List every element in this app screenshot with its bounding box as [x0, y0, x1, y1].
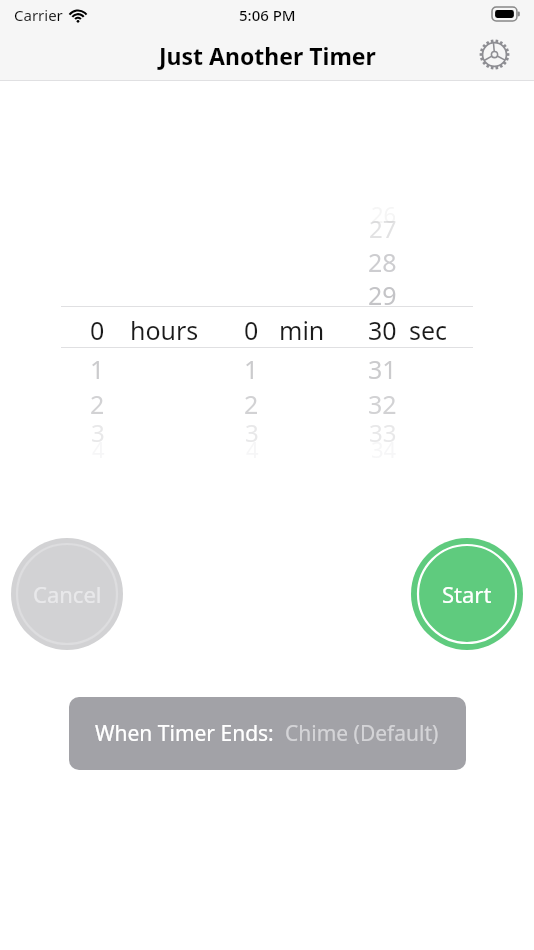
staticText: 27: [369, 212, 397, 242]
staticText: Carrier: [14, 5, 63, 25]
staticText: 2: [90, 387, 105, 417]
staticText: 5:06 PM: [239, 5, 296, 25]
staticText: 29: [368, 278, 397, 308]
staticText: 3: [245, 416, 259, 446]
staticText: 26: [371, 199, 397, 229]
staticText: 28: [368, 245, 397, 275]
staticText: sec: [409, 313, 448, 343]
staticText: 0: [90, 313, 105, 343]
staticText: 4: [246, 434, 259, 464]
staticText: When Timer Ends:: [95, 719, 274, 748]
staticText: 0: [244, 313, 259, 343]
staticText: 33: [369, 416, 397, 446]
staticText: 3: [91, 416, 105, 446]
staticText: 30: [368, 313, 397, 343]
staticText: Start: [442, 579, 492, 609]
button[interactable]: Settings: [472, 32, 516, 76]
staticText: min: [279, 313, 325, 343]
staticText: 1: [244, 352, 259, 382]
button[interactable]: Cancel: [11, 538, 123, 650]
staticText: Chime (Default): [285, 719, 439, 748]
button[interactable]: When Timer Ends:: [69, 697, 466, 770]
staticText: 32: [368, 387, 397, 417]
staticText: Cancel: [33, 579, 102, 609]
staticText: 1: [90, 352, 105, 382]
staticText: Just Another Timer: [159, 40, 376, 71]
staticText: 4: [92, 434, 105, 464]
staticText: 34: [371, 434, 397, 464]
staticText: hours: [130, 313, 199, 343]
staticText: 31: [368, 352, 397, 382]
button[interactable]: Start: [411, 538, 523, 650]
staticText: 2: [244, 387, 259, 417]
